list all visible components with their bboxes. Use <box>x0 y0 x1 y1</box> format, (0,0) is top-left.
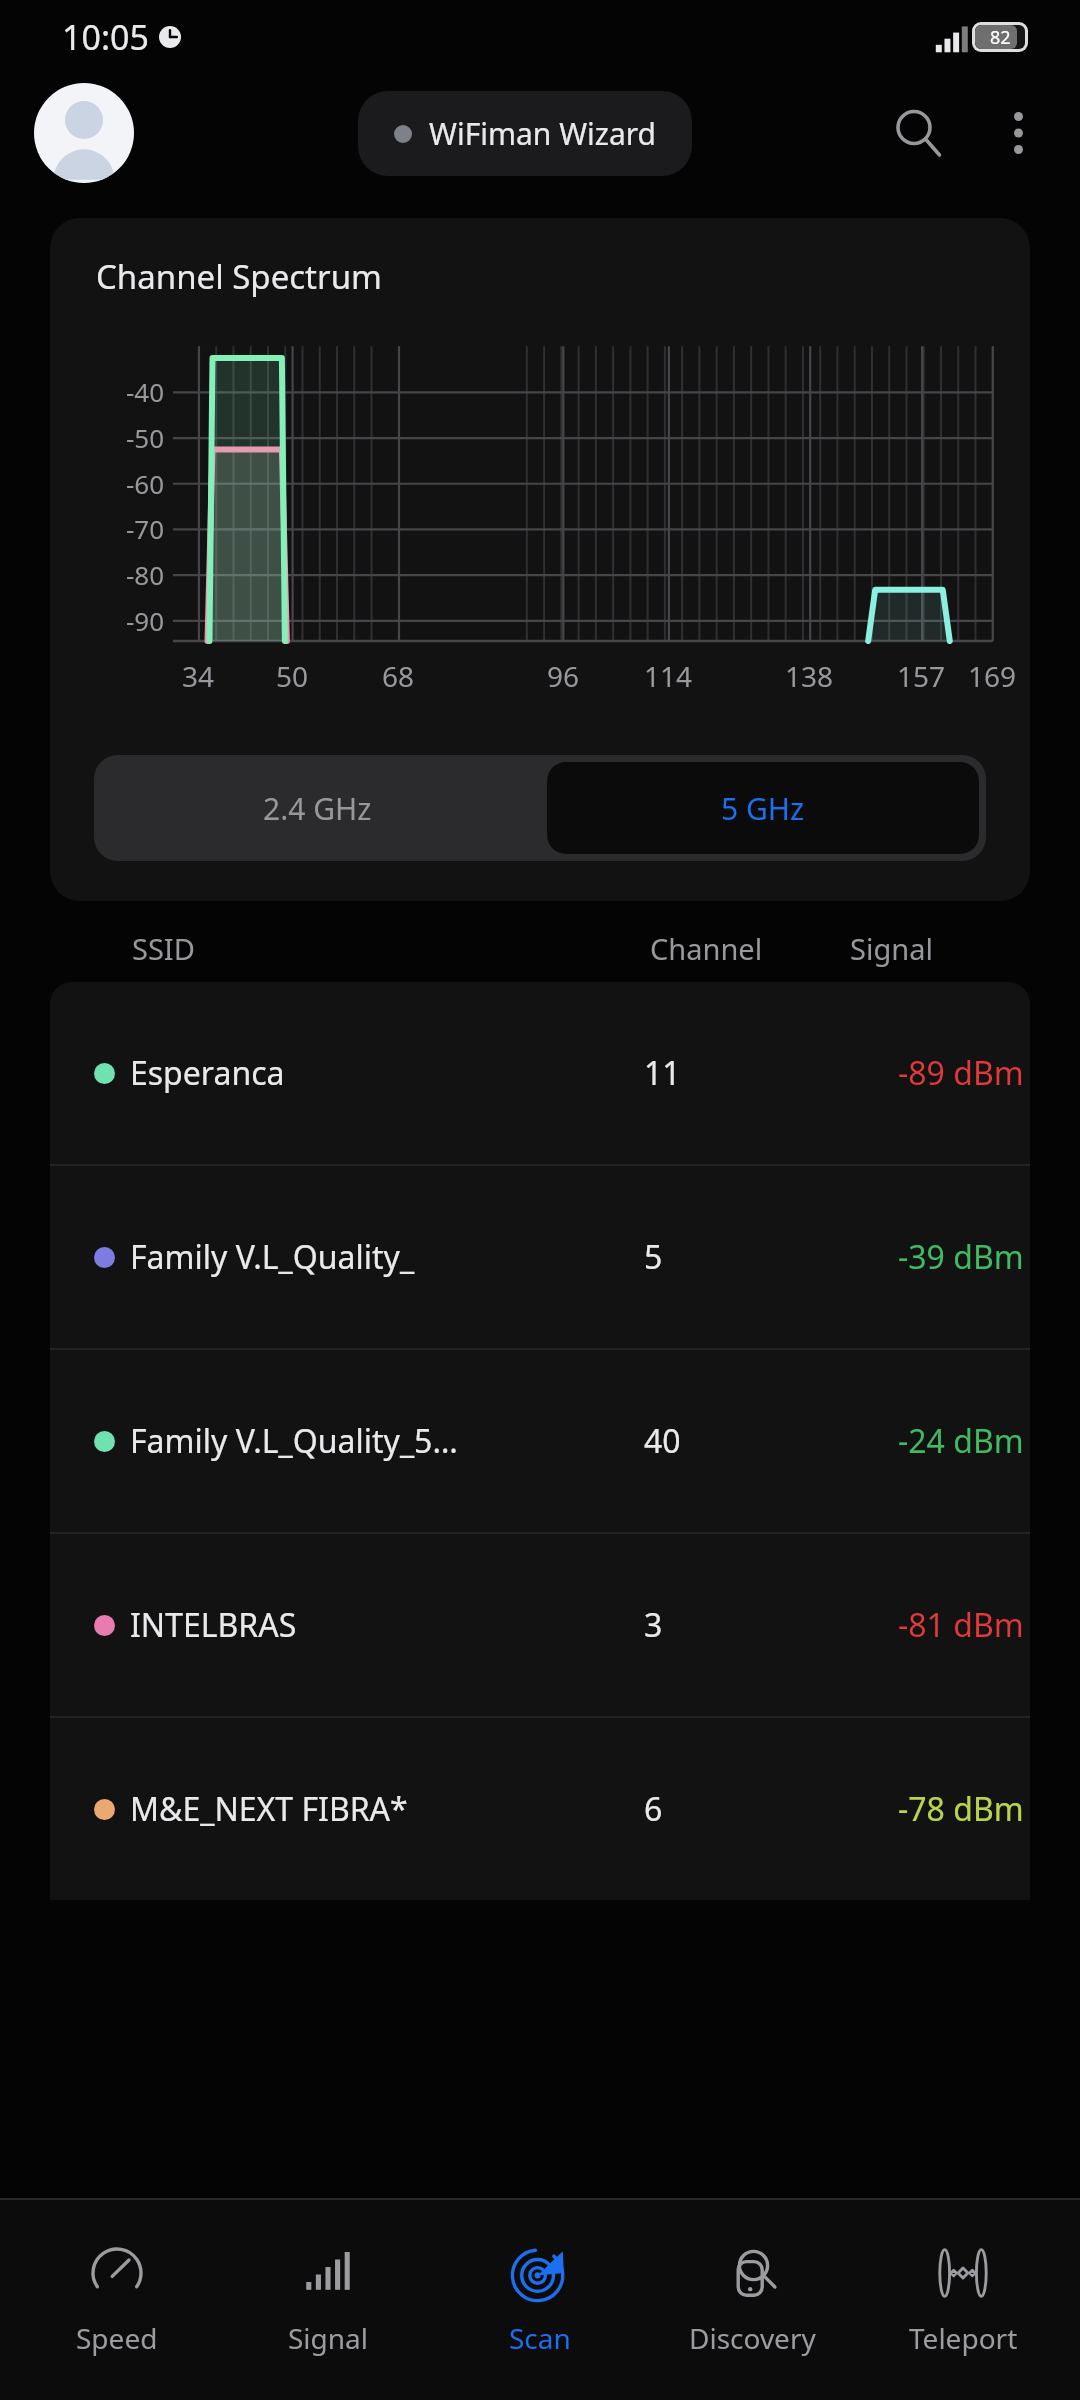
staticText: 40 <box>644 1419 681 1463</box>
staticText: -78 dBm <box>898 1787 1024 1831</box>
staticText: Family V.L_Quality_ <box>130 1235 644 1279</box>
staticText: 169 <box>968 657 1017 695</box>
staticText: -50 <box>125 420 164 455</box>
staticText: -24 dBm <box>898 1419 1024 1463</box>
staticText: Teleport <box>909 2319 1018 2357</box>
staticText: WiFiman Wizard <box>429 113 656 154</box>
staticText: -39 dBm <box>898 1235 1024 1279</box>
staticText: 138 <box>785 657 834 695</box>
staticText: -89 dBm <box>898 1051 1024 1095</box>
button[interactable]: Scan <box>445 2200 635 2400</box>
button[interactable]: WiFiman Wizard <box>358 91 692 176</box>
staticText: 50 <box>276 657 309 695</box>
staticText: 34 <box>182 657 215 695</box>
staticText: 6 <box>644 1787 663 1831</box>
button[interactable]: 5 GHz <box>547 762 979 854</box>
staticText: -60 <box>125 466 164 501</box>
button[interactable]: M&E_NEXT FIBRA* <box>50 1718 1030 1900</box>
button[interactable]: Discovery <box>657 2200 847 2400</box>
staticText: Family V.L_Quality_5… <box>130 1419 644 1463</box>
staticText: 5 <box>644 1235 663 1279</box>
staticText: M&E_NEXT FIBRA* <box>130 1787 644 1831</box>
button[interactable]: Signal <box>233 2200 423 2400</box>
staticText: 5 GHz <box>721 788 805 829</box>
button[interactable]: 2.4 GHz <box>94 755 540 861</box>
button[interactable]: More options <box>982 97 1054 169</box>
staticText: 11 <box>644 1051 681 1095</box>
staticText: 157 <box>897 657 946 695</box>
staticText: INTELBRAS <box>130 1603 644 1647</box>
staticText: -90 <box>125 603 164 638</box>
staticText: Signal <box>288 2319 369 2357</box>
staticText: Esperanca <box>130 1051 644 1095</box>
staticText: Scan <box>509 2319 571 2357</box>
button[interactable]: Teleport <box>868 2200 1058 2400</box>
button[interactable]: Esperanca <box>50 982 1030 1164</box>
staticText: Signal <box>850 929 933 968</box>
button[interactable]: Profile <box>34 83 134 183</box>
staticText: Speed <box>76 2319 158 2357</box>
staticText: -81 dBm <box>898 1603 1024 1647</box>
staticText: 10:05 <box>62 14 149 60</box>
button[interactable]: INTELBRAS <box>50 1534 1030 1716</box>
staticText: SSID <box>132 929 195 968</box>
staticText: 82 <box>990 25 1011 49</box>
staticText: Discovery <box>689 2319 816 2357</box>
staticText: -70 <box>125 511 164 546</box>
staticText: -80 <box>125 557 164 592</box>
staticText: 3 <box>644 1603 663 1647</box>
button[interactable]: Speed <box>22 2200 212 2400</box>
button[interactable]: Family V.L_Quality_5… <box>50 1350 1030 1532</box>
staticText: Channel <box>650 929 763 968</box>
staticText: -40 <box>125 374 164 409</box>
staticText: 114 <box>644 657 693 695</box>
staticText: Channel Spectrum <box>96 254 382 299</box>
button[interactable]: Search <box>878 93 958 173</box>
staticText: 68 <box>382 657 415 695</box>
staticText: 96 <box>547 657 580 695</box>
button[interactable]: Family V.L_Quality_ <box>50 1166 1030 1348</box>
staticText: 2.4 GHz <box>263 788 372 829</box>
